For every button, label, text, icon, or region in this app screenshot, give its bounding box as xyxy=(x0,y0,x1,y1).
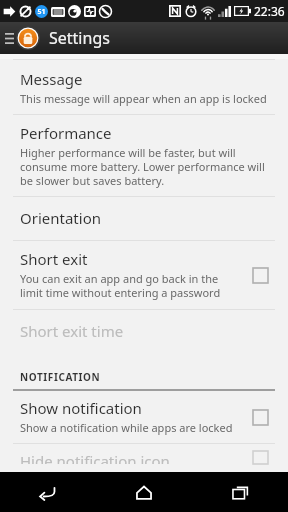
button[interactable]: Navigate up xyxy=(2,22,16,54)
button[interactable]: Performance xyxy=(0,115,288,196)
button[interactable]: Orientation xyxy=(0,197,288,240)
staticText: Show a notification while apps are locke… xyxy=(20,420,233,435)
staticText: Short exit time xyxy=(20,321,124,341)
button[interactable]: Home xyxy=(96,472,192,512)
button[interactable]: Short exit time xyxy=(0,310,288,353)
staticText: 51 xyxy=(37,7,46,17)
staticText: Orientation xyxy=(20,208,101,228)
button[interactable]: Short exit xyxy=(246,261,274,289)
staticText: This message will appear when an app is … xyxy=(20,91,267,106)
staticText: Short exit xyxy=(20,249,88,269)
staticText: Settings xyxy=(49,27,110,49)
staticText: Higher performance will be faster, but w… xyxy=(20,145,274,188)
staticText: Performance xyxy=(20,123,112,143)
button[interactable]: Hide notification icon xyxy=(0,444,288,472)
button[interactable]: Short exit xyxy=(0,241,288,309)
button[interactable]: Show notification xyxy=(0,391,288,443)
staticText: Hide notification icon xyxy=(20,451,170,464)
button[interactable]: Show notification xyxy=(246,403,274,431)
staticText: NOTIFICATION xyxy=(20,370,101,384)
button[interactable]: Message xyxy=(0,60,288,114)
button[interactable]: Hide notification icon xyxy=(246,451,274,464)
button[interactable]: Recent apps xyxy=(192,472,288,512)
staticText: 22:36 xyxy=(254,3,285,19)
button[interactable]: App icon xyxy=(16,26,40,50)
staticText: Message xyxy=(20,69,83,89)
staticText: Show notification xyxy=(20,398,142,418)
staticText: You can exit an app and go back in the l… xyxy=(20,271,238,300)
button[interactable]: Back xyxy=(0,472,96,512)
